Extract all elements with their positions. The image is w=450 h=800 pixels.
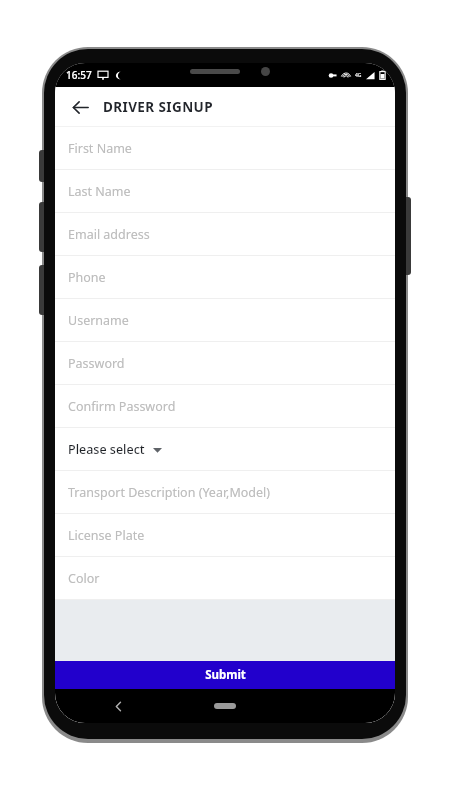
- button[interactable]: Back: [107, 695, 129, 717]
- button[interactable]: Username: [55, 299, 395, 342]
- button[interactable]: Confirm Password: [55, 385, 395, 428]
- button[interactable]: Back: [65, 92, 95, 122]
- staticText: Phone: [68, 269, 106, 286]
- button[interactable]: Phone: [55, 256, 395, 299]
- staticText: Color: [68, 570, 100, 587]
- staticText: First Name: [68, 140, 132, 157]
- staticText: Transport Description (Year,Model): [68, 484, 271, 501]
- staticText: Please select: [68, 441, 145, 458]
- staticText: 16:57: [66, 68, 92, 82]
- button[interactable]: Color: [55, 557, 395, 600]
- button[interactable]: Home: [208, 699, 242, 713]
- button[interactable]: Email address: [55, 213, 395, 256]
- button[interactable]: Password: [55, 342, 395, 385]
- button[interactable]: First Name: [55, 127, 395, 170]
- button[interactable]: Last Name: [55, 170, 395, 213]
- staticText: Username: [68, 312, 129, 329]
- staticText: Last Name: [68, 183, 131, 200]
- button[interactable]: License Plate: [55, 514, 395, 557]
- staticText: Password: [68, 355, 125, 372]
- staticText: Submit: [205, 667, 246, 683]
- staticText: DRIVER SIGNUP: [103, 98, 213, 116]
- staticText: Confirm Password: [68, 398, 176, 415]
- button[interactable]: Please select: [55, 428, 395, 471]
- staticText: 4G: [355, 72, 362, 79]
- staticText: License Plate: [68, 527, 145, 544]
- button[interactable]: Transport Description (Year,Model): [55, 471, 395, 514]
- button[interactable]: Submit: [55, 661, 395, 689]
- staticText: Email address: [68, 226, 150, 243]
